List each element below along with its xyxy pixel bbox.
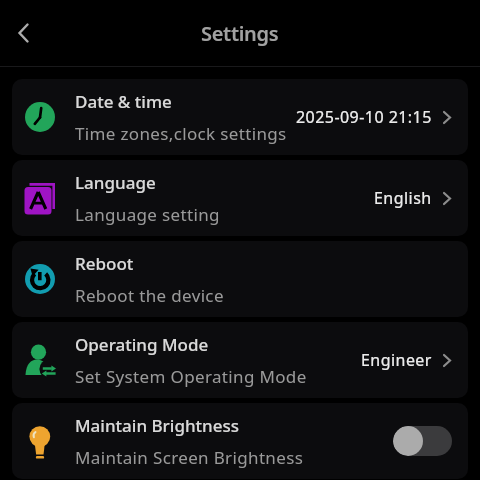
staticText: Maintain Screen Brightness [75,446,304,469]
staticText: Date & time [75,90,172,113]
staticText: Reboot the device [75,284,224,307]
staticText: Operating Mode [75,333,209,356]
button[interactable] [6,15,42,51]
button[interactable]: Operating Mode [12,322,468,398]
button[interactable]: Maintain Brightness [12,403,468,479]
staticText: Time zones,clock settings [75,122,287,145]
button[interactable]: Language [12,160,468,236]
staticText: Language setting [75,203,220,226]
button[interactable] [393,426,452,456]
button[interactable]: Date & time [12,79,468,155]
staticText: Engineer [361,349,432,371]
staticText: 2025-09-10 21:15 [296,106,432,128]
staticText: English [374,187,432,209]
staticText: Settings [201,20,279,47]
staticText: Language [75,171,156,194]
button[interactable]: Reboot [12,241,468,317]
staticText: Reboot [75,252,134,275]
staticText: Set System Operating Mode [75,365,307,388]
staticText: Maintain Brightness [75,414,240,437]
